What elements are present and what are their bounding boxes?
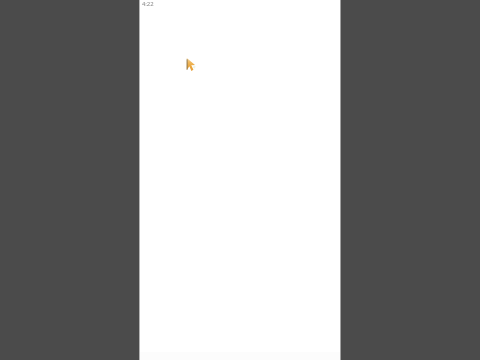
staticText: 4:22	[142, 0, 154, 8]
other: Mouse pointer	[186, 58, 196, 71]
